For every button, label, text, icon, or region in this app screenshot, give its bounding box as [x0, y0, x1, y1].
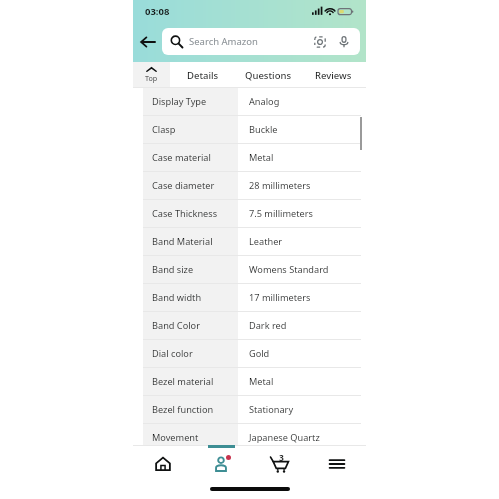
staticText: Bezel material: [152, 375, 214, 388]
button[interactable]: Alexa: [328, 447, 359, 478]
staticText: Dial color: [152, 347, 193, 360]
staticText: 7.5 millimeters: [249, 207, 313, 220]
staticText: Case material: [152, 151, 211, 164]
staticText: Japanese Quartz: [249, 431, 320, 444]
staticText: Stationary: [249, 403, 294, 416]
staticText: Buckle: [249, 123, 278, 136]
button[interactable]: Home: [133, 445, 192, 483]
staticText: Band Color: [152, 319, 200, 332]
button[interactable]: Reviews: [301, 62, 366, 88]
button[interactable]: Details: [170, 62, 236, 88]
button[interactable]: Menu: [308, 445, 366, 483]
button[interactable]: Clasp: [143, 116, 361, 143]
button[interactable]: Display Type: [143, 88, 361, 115]
staticText: Case diameter: [152, 179, 215, 192]
button[interactable]: Top: [133, 62, 170, 88]
staticText: Womens Standard: [249, 263, 329, 276]
button[interactable]: Case diameter: [143, 172, 361, 199]
staticText: Top: [145, 73, 158, 83]
staticText: Leather: [249, 235, 283, 248]
staticText: Metal: [249, 375, 274, 388]
staticText: Case Thickness: [152, 207, 218, 220]
staticText: Details: [187, 69, 219, 82]
button[interactable]: Search by voice: [335, 33, 352, 50]
button[interactable]: Questions: [236, 62, 301, 88]
staticText: Questions: [245, 69, 292, 82]
staticText: 03:08: [145, 5, 170, 18]
staticText: 17 millimeters: [249, 291, 311, 304]
button[interactable]: Your account: [192, 445, 250, 483]
button[interactable]: Back: [133, 27, 162, 56]
staticText: Movement: [152, 431, 199, 444]
button[interactable]: Search by camera: [311, 33, 328, 50]
staticText: Display Type: [152, 95, 207, 108]
staticText: Bezel function: [152, 403, 214, 416]
button[interactable]: Band width: [143, 284, 361, 311]
button[interactable]: Case material: [143, 144, 361, 171]
button[interactable]: Cart, 3 items: [250, 445, 308, 483]
staticText: Reviews: [315, 69, 352, 82]
button[interactable]: Band Material: [143, 228, 361, 255]
staticText: Band Material: [152, 235, 213, 248]
staticText: Band width: [152, 291, 202, 304]
staticText: Band size: [152, 263, 194, 276]
staticText: Dark red: [249, 319, 287, 332]
button[interactable]: Bezel function: [143, 396, 361, 423]
staticText: 28 millimeters: [249, 179, 311, 192]
button[interactable]: Band Color: [143, 312, 361, 339]
staticText: 3: [279, 452, 284, 464]
button[interactable]: Bezel material: [143, 368, 361, 395]
staticText: Clasp: [152, 123, 176, 136]
staticText: Metal: [249, 151, 274, 164]
button[interactable]: Case Thickness: [143, 200, 361, 227]
button[interactable]: Movement: [143, 424, 361, 451]
staticText: Search Amazon: [189, 35, 258, 48]
staticText: Analog: [249, 95, 280, 108]
button[interactable]: Dial color: [143, 340, 361, 367]
staticText: Gold: [249, 347, 270, 360]
button[interactable]: Band size: [143, 256, 361, 283]
button[interactable]: Search Amazon: [162, 28, 360, 55]
